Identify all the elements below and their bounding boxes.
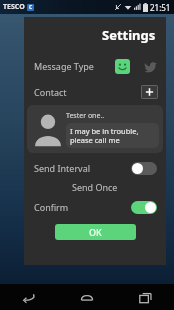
button[interactable]: Back — [0, 284, 58, 310]
button[interactable]: Twitter message type — [144, 59, 158, 73]
button[interactable]: Home — [58, 284, 116, 310]
staticText: Tester one.. — [66, 111, 105, 121]
button[interactable]: Add contact — [141, 85, 158, 99]
staticText: 21:51 — [150, 2, 171, 13]
staticText: Send Interval — [34, 162, 91, 174]
staticText: Send Once — [72, 181, 118, 193]
button[interactable]: OK — [55, 224, 136, 240]
staticText: Contact — [34, 86, 67, 98]
staticText: TESCO — [3, 2, 25, 12]
button[interactable]: Confirm toggle — [131, 201, 157, 214]
button[interactable]: Recent apps — [116, 284, 174, 310]
button[interactable]: SMS message type — [115, 59, 130, 74]
staticText: C — [29, 4, 33, 11]
button[interactable]: Tester one.. — [27, 105, 163, 153]
staticText: OK — [89, 226, 102, 238]
staticText: Confirm — [34, 201, 69, 213]
staticText: Message Type — [34, 60, 94, 72]
button[interactable]: Send Interval toggle — [131, 162, 157, 175]
staticText: Settings — [102, 26, 156, 44]
staticText: I may be in trouble, please call me — [70, 126, 155, 145]
